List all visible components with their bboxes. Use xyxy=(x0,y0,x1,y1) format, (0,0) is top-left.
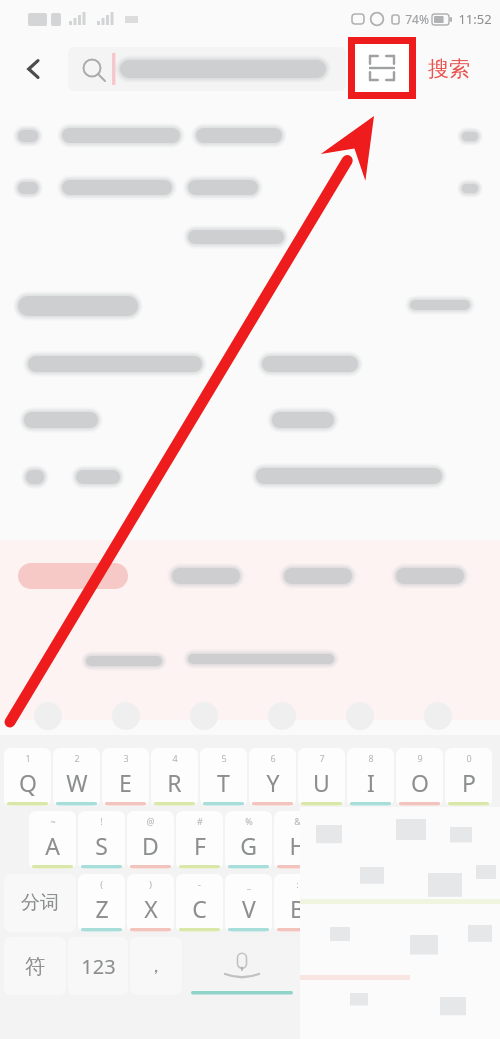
staticText: ( xyxy=(100,878,103,890)
staticText: T xyxy=(217,767,230,798)
staticText: A xyxy=(45,830,60,861)
button[interactable]: 9 xyxy=(396,748,443,806)
staticText: ! xyxy=(100,815,103,827)
staticText: Z xyxy=(95,893,109,924)
button[interactable]: # xyxy=(176,811,223,869)
staticText: 分词 xyxy=(21,891,59,915)
staticText: S xyxy=(95,830,108,861)
button[interactable]: 分词 xyxy=(4,874,76,932)
button[interactable]: ) xyxy=(127,874,174,932)
button[interactable]: ~ xyxy=(29,811,76,869)
button[interactable]: 1 xyxy=(4,748,51,806)
button[interactable]: ， xyxy=(130,937,182,995)
staticText: H xyxy=(289,830,307,861)
button[interactable]: " xyxy=(421,811,468,869)
staticText: 11:52 xyxy=(458,10,492,28)
button[interactable]: 3 xyxy=(102,748,149,806)
button[interactable] xyxy=(421,874,493,932)
staticText: U xyxy=(313,767,330,798)
staticText: _ xyxy=(247,878,251,890)
staticText: Q xyxy=(19,767,37,798)
staticText: 符 xyxy=(25,954,45,979)
staticText: K xyxy=(388,830,403,861)
staticText: ' xyxy=(394,815,397,827)
staticText: 0 xyxy=(466,752,472,764)
button[interactable]: - xyxy=(176,874,223,932)
button[interactable]: ' xyxy=(372,811,419,869)
staticText: M xyxy=(385,893,406,924)
button[interactable]: @ xyxy=(127,811,174,869)
staticText: V xyxy=(242,893,256,924)
button[interactable]: _ xyxy=(225,874,272,932)
staticText: P xyxy=(462,767,476,798)
staticText: 8 xyxy=(368,752,374,764)
staticText: : xyxy=(296,878,299,890)
staticText: R xyxy=(167,767,182,798)
button[interactable]: : xyxy=(274,874,321,932)
staticText: ) xyxy=(149,878,152,890)
staticText: X xyxy=(144,893,158,924)
button[interactable]: 搜索 xyxy=(428,45,470,93)
button[interactable]: 5 xyxy=(200,748,247,806)
staticText: ~ xyxy=(50,815,56,827)
staticText: C xyxy=(192,893,207,924)
button[interactable]: 符 xyxy=(4,937,66,995)
staticText: 4 xyxy=(172,752,178,764)
staticText: L xyxy=(438,830,451,861)
staticText: - xyxy=(198,878,201,890)
button[interactable]: Back xyxy=(14,49,54,89)
staticText: F xyxy=(194,830,206,861)
button[interactable]: 8 xyxy=(347,748,394,806)
button[interactable] xyxy=(68,47,346,91)
staticText: & xyxy=(294,815,301,827)
staticText: 1 xyxy=(25,752,31,764)
staticText: # xyxy=(197,815,203,827)
staticText: 6 xyxy=(270,752,276,764)
button[interactable] xyxy=(184,937,300,995)
staticText: ， xyxy=(147,955,165,978)
staticText: 3 xyxy=(123,752,129,764)
button[interactable]: ( xyxy=(78,874,125,932)
staticText: 9 xyxy=(417,752,423,764)
button[interactable]: & xyxy=(274,811,321,869)
button[interactable]: * xyxy=(323,811,370,869)
staticText: G xyxy=(240,830,257,861)
button[interactable]: ! xyxy=(78,811,125,869)
button[interactable]: 4 xyxy=(151,748,198,806)
staticText: 74% xyxy=(405,11,429,27)
staticText: 7 xyxy=(319,752,325,764)
staticText: @ xyxy=(146,815,155,827)
staticText: Y xyxy=(266,767,280,798)
staticText: N xyxy=(338,893,356,924)
button[interactable]: ; xyxy=(323,874,370,932)
staticText: B xyxy=(290,893,305,924)
staticText: D xyxy=(142,830,159,861)
button[interactable]: 7 xyxy=(298,748,345,806)
staticText: 搜索 xyxy=(428,56,470,82)
button[interactable]: Scan xyxy=(355,44,409,92)
button[interactable]: 123 xyxy=(68,937,128,995)
staticText: 2 xyxy=(74,752,80,764)
staticText: % xyxy=(245,815,253,827)
staticText: 123 xyxy=(81,953,116,980)
button[interactable]: % xyxy=(225,811,272,869)
staticText: 5 xyxy=(221,752,227,764)
button[interactable]: / xyxy=(372,874,419,932)
button[interactable]: 6 xyxy=(249,748,296,806)
button[interactable]: 2 xyxy=(53,748,100,806)
staticText: W xyxy=(66,767,88,798)
staticText: O xyxy=(411,767,429,798)
staticText: E xyxy=(119,767,132,798)
button[interactable]: 0 xyxy=(445,748,492,806)
staticText: I xyxy=(367,767,375,798)
